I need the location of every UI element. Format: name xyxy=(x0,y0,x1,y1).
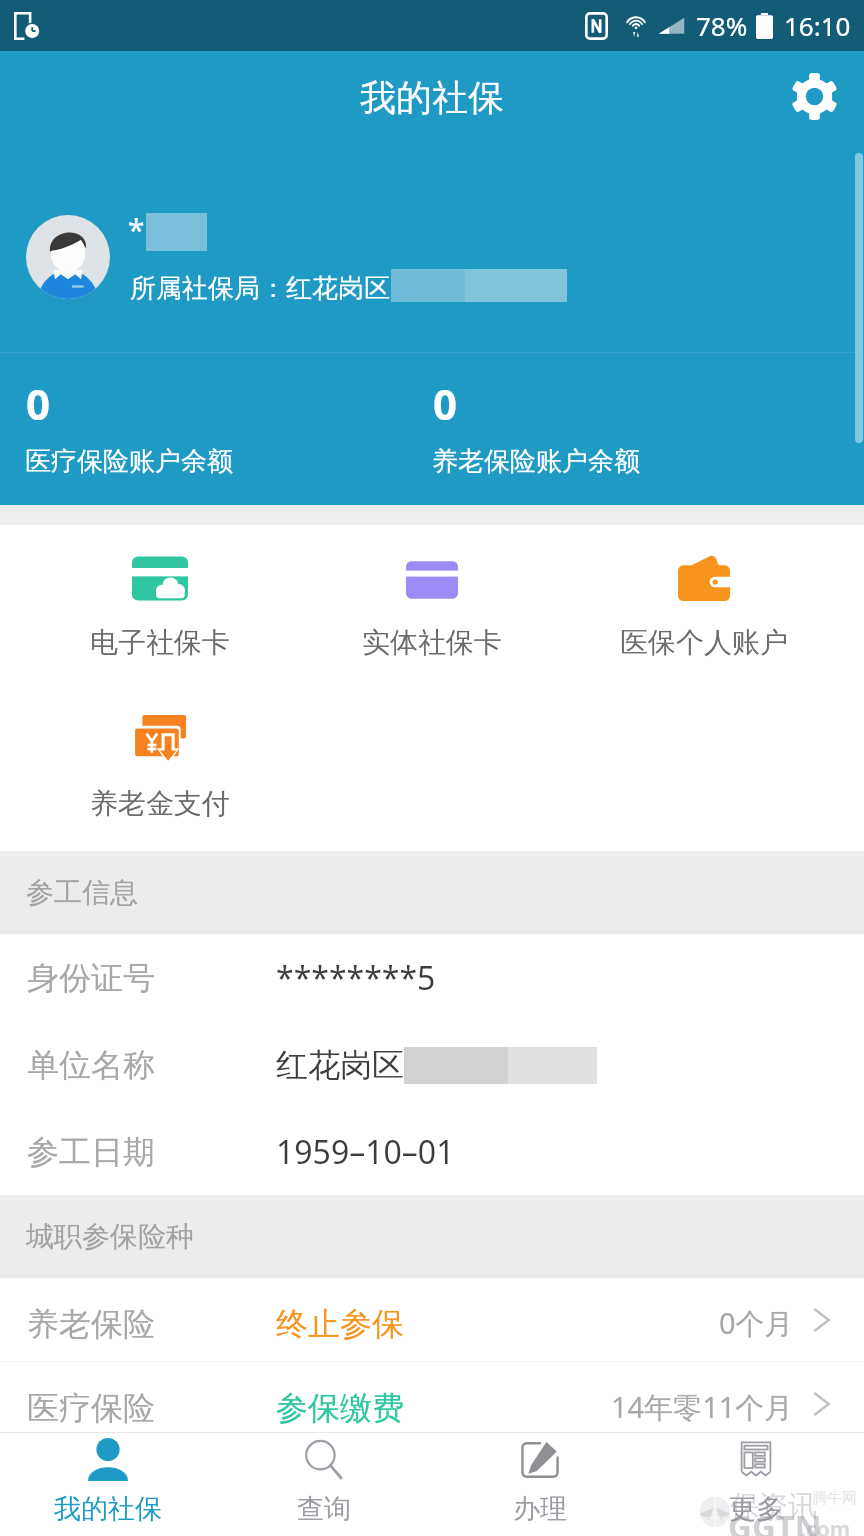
staticText: 养老金支付 xyxy=(90,786,230,821)
staticText: 我的社保 xyxy=(360,75,504,120)
button[interactable]: 身份证号 xyxy=(0,934,864,1021)
staticText: 腾牛网 xyxy=(812,1489,857,1508)
staticText: 医疗保险 xyxy=(27,1388,276,1428)
staticText: 我的社保 xyxy=(54,1492,162,1526)
button[interactable]: 查询 xyxy=(216,1433,432,1536)
staticText: 养老保险 xyxy=(27,1304,276,1344)
button[interactable]: 医疗保险 xyxy=(0,1362,864,1432)
staticText: 更多 xyxy=(729,1492,783,1526)
staticText: 终止参保 xyxy=(276,1304,404,1344)
staticText: .com xyxy=(800,1515,851,1536)
staticText: 参工信息 xyxy=(26,875,138,910)
staticText: 参保缴费 xyxy=(276,1388,404,1428)
button[interactable]: 医保个人账户 xyxy=(568,555,840,660)
staticText: 0个月 xyxy=(719,1303,794,1343)
button[interactable]: 我的社保 xyxy=(0,1433,216,1536)
button[interactable]: 更多 xyxy=(648,1433,864,1536)
button[interactable]: Settings xyxy=(786,68,842,124)
staticText: 医疗保险账户余额 xyxy=(25,445,233,478)
staticText: 保资讯 xyxy=(730,1488,817,1525)
staticText: 红花岗区 xyxy=(276,1045,404,1085)
staticText: 查询 xyxy=(297,1492,351,1526)
staticText: 78% xyxy=(696,8,748,43)
staticText: 单位名称 xyxy=(27,1045,276,1085)
button[interactable]: 参工日期 xyxy=(0,1108,864,1195)
staticText: 医保个人账户 xyxy=(620,625,788,660)
staticText: 0 xyxy=(26,375,51,432)
button[interactable]: 0 xyxy=(0,353,432,505)
staticText: 0 xyxy=(433,375,458,432)
button[interactable]: 办理 xyxy=(432,1433,648,1536)
staticText: 办理 xyxy=(513,1492,567,1526)
staticText: 所属社保局：红花岗区 xyxy=(130,272,390,305)
button[interactable]: 养老保险 xyxy=(0,1278,864,1361)
button[interactable]: 0 xyxy=(432,353,864,505)
staticText: 1959–10–01 xyxy=(276,1130,455,1174)
staticText: 电子社保卡 xyxy=(90,625,230,660)
button[interactable]: 电子社保卡 xyxy=(24,555,296,660)
button[interactable]: 实体社保卡 xyxy=(296,555,568,660)
button[interactable]: * xyxy=(0,151,864,352)
staticText: * xyxy=(128,209,145,250)
staticText: 实体社保卡 xyxy=(362,625,502,660)
staticText: 参工日期 xyxy=(27,1132,276,1172)
staticText: 养老保险账户余额 xyxy=(432,445,640,478)
staticText: GGTN xyxy=(728,1504,822,1536)
staticText: 16:10 xyxy=(784,8,851,43)
staticText: 身份证号 xyxy=(27,958,276,998)
staticText: ********5 xyxy=(276,956,436,1000)
button[interactable]: 养老金支付 xyxy=(24,713,296,821)
staticText: 城职参保险种 xyxy=(26,1219,194,1254)
staticText: 14年零11个月 xyxy=(611,1387,794,1427)
button[interactable]: 单位名称 xyxy=(0,1021,864,1108)
